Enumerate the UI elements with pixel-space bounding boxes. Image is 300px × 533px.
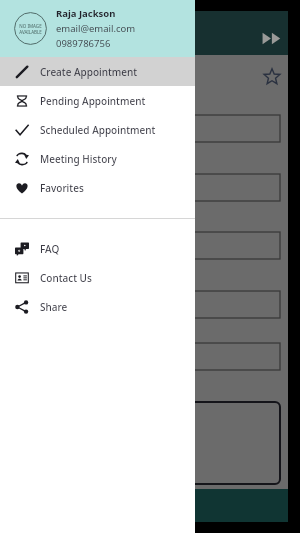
button[interactable]: FAQ [0, 234, 195, 263]
staticText: FAQ [40, 242, 60, 256]
staticText: Create Appointment [14, 30, 138, 48]
staticText: Meeting History [40, 152, 117, 166]
staticText: 0989786756 [56, 37, 111, 50]
staticText: Pending Appointment [40, 94, 146, 108]
staticText: AVAILABLE [19, 29, 42, 35]
button[interactable]: Scheduled Appointment [0, 115, 195, 144]
button[interactable]: Favourite [261, 66, 283, 88]
staticText: email@email.com [56, 22, 136, 35]
button[interactable]: Create Appointment [0, 57, 195, 86]
staticText: Raja Jackson [56, 7, 116, 20]
staticText: Favorites [40, 181, 84, 195]
button[interactable]: Next [258, 25, 284, 51]
staticText: NO IMAGE [19, 23, 42, 29]
button[interactable]: Share [0, 292, 195, 321]
button[interactable]: Pending Appointment [0, 86, 195, 115]
staticText: Contact Us [40, 271, 92, 285]
staticText: Share [40, 300, 68, 314]
button[interactable]: Contact Us [0, 263, 195, 292]
staticText: Create Appointment [40, 65, 138, 79]
button[interactable]: Favorites [0, 173, 195, 202]
button[interactable]: Meeting History [0, 144, 195, 173]
staticText: Scheduled Appointment [40, 123, 156, 137]
